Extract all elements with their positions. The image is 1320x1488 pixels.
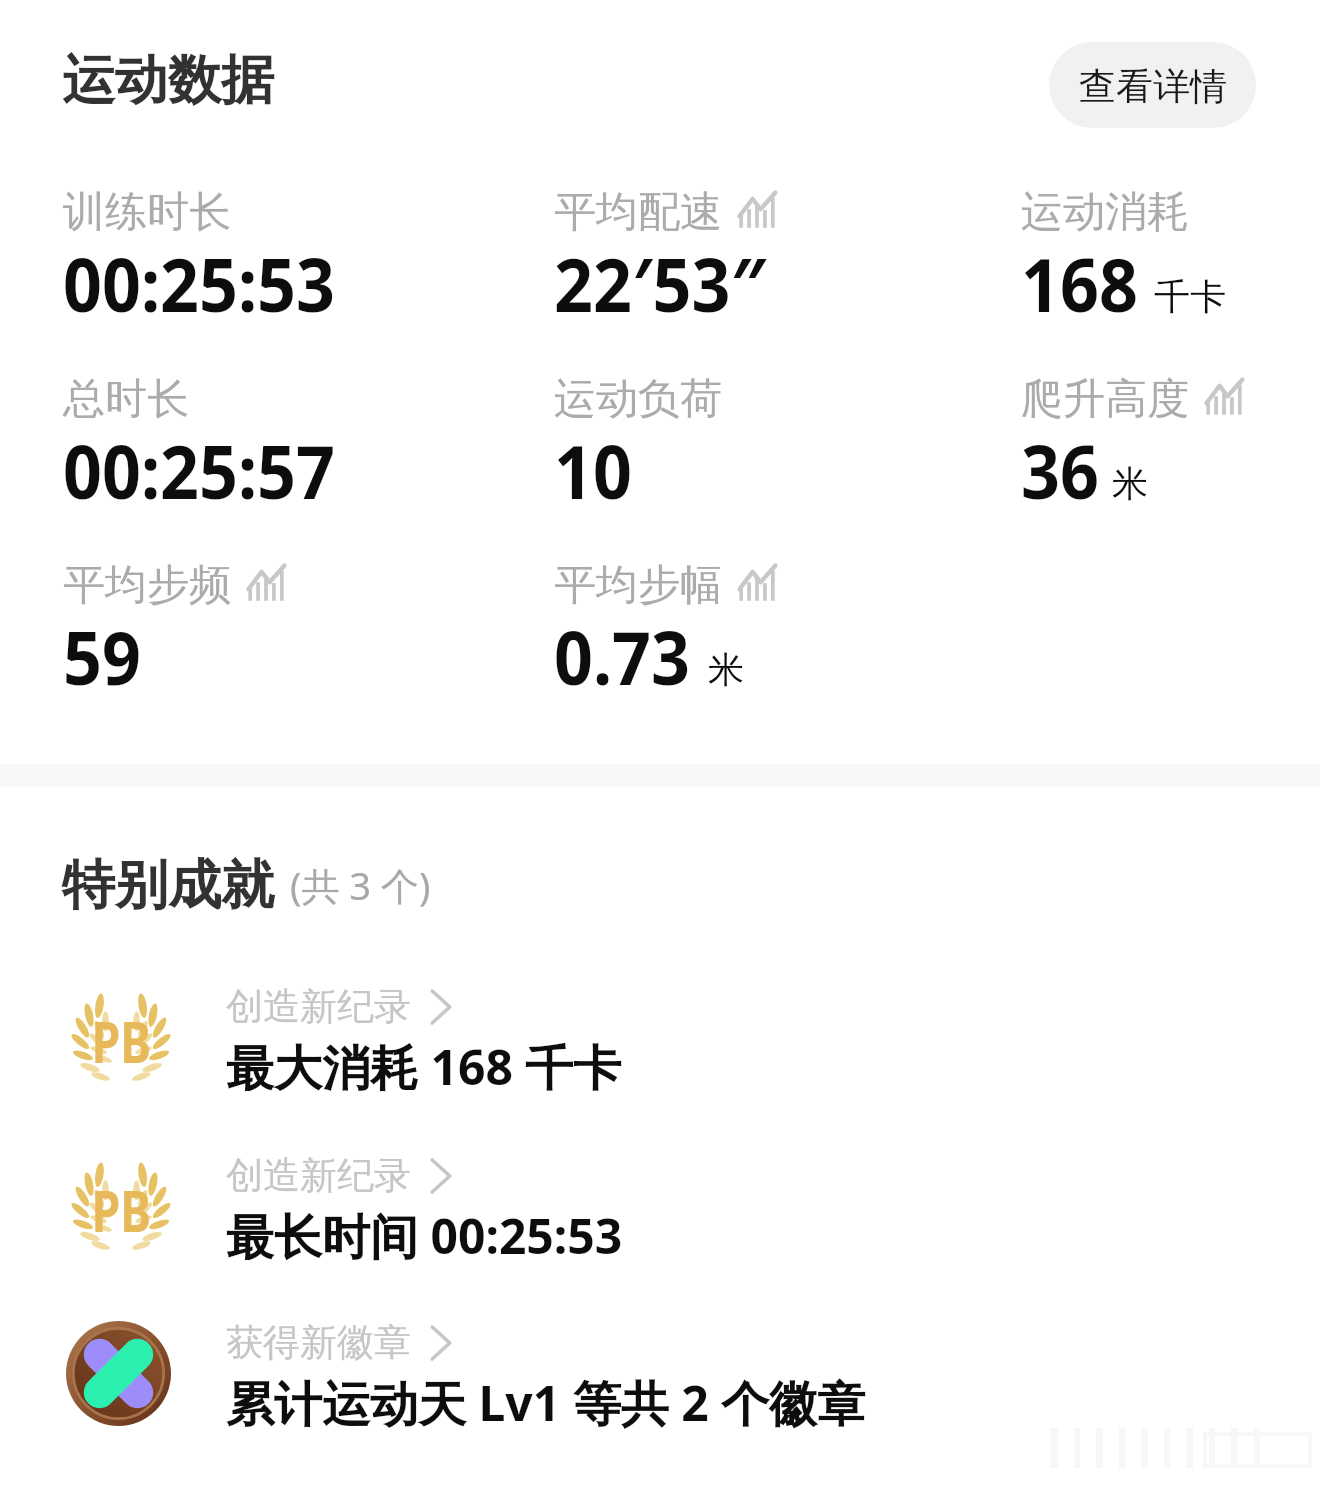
- staticText: 累计运动天 Lv1 等共 2 个徽章: [226, 1370, 866, 1436]
- staticText: 运动数据: [62, 47, 274, 114]
- staticText: 00:25:53: [63, 233, 335, 334]
- staticText: 平均步频: [63, 559, 231, 612]
- button[interactable]: 平均步频: [63, 559, 288, 713]
- staticText: 创造新纪录: [226, 983, 411, 1030]
- staticText: PB: [91, 1001, 151, 1080]
- staticText: 平均配速: [554, 186, 722, 239]
- staticText: 运动消耗: [1021, 186, 1189, 239]
- staticText: 59: [63, 606, 141, 707]
- staticText: 总时长: [63, 373, 189, 426]
- other: Open 创造新纪录: [421, 1156, 461, 1196]
- button[interactable]: 获得新徽章: [0, 1325, 1320, 1465]
- button[interactable]: 平均配速: [554, 186, 785, 340]
- staticText: 最大消耗 168 千卡: [226, 1034, 622, 1100]
- other: Open 创造新纪录: [421, 987, 461, 1027]
- button[interactable]: 爬升高度: [1021, 373, 1246, 527]
- other: View 平均步幅 chart: [735, 562, 779, 606]
- staticText: 米: [1112, 461, 1148, 506]
- other: View 平均步频 chart: [244, 562, 288, 606]
- staticText: 千卡: [1154, 274, 1226, 319]
- staticText: 平均步幅: [554, 559, 722, 612]
- button[interactable]: PB: [0, 989, 1320, 1129]
- other: View 平均配速 chart: [735, 189, 779, 233]
- staticText: 0.73: [554, 606, 690, 707]
- staticText: 最长时间 00:25:53: [226, 1203, 623, 1269]
- staticText: (共 3 个): [290, 859, 431, 911]
- staticText: 00:25:57: [63, 420, 335, 521]
- staticText: 获得新徽章: [226, 1319, 411, 1366]
- button[interactable]: 查看详情: [1049, 42, 1256, 128]
- staticText: 22′53″: [554, 233, 766, 334]
- staticText: 运动负荷: [554, 373, 722, 426]
- staticText: 爬升高度: [1021, 373, 1189, 426]
- other: Open 获得新徽章: [421, 1323, 461, 1363]
- staticText: PB: [91, 1170, 151, 1249]
- staticText: 训练时长: [63, 186, 231, 239]
- staticText: 查看详情: [1079, 63, 1227, 110]
- other: View 爬升高度 chart: [1202, 376, 1246, 420]
- staticText: 168: [1021, 233, 1138, 334]
- button[interactable]: PB: [0, 1158, 1320, 1298]
- staticText: 10: [554, 420, 632, 521]
- button[interactable]: 平均步幅: [554, 559, 779, 713]
- staticText: 创造新纪录: [226, 1152, 411, 1199]
- staticText: 米: [708, 647, 744, 692]
- staticText: 36: [1021, 420, 1099, 521]
- staticText: 特别成就: [62, 852, 274, 919]
